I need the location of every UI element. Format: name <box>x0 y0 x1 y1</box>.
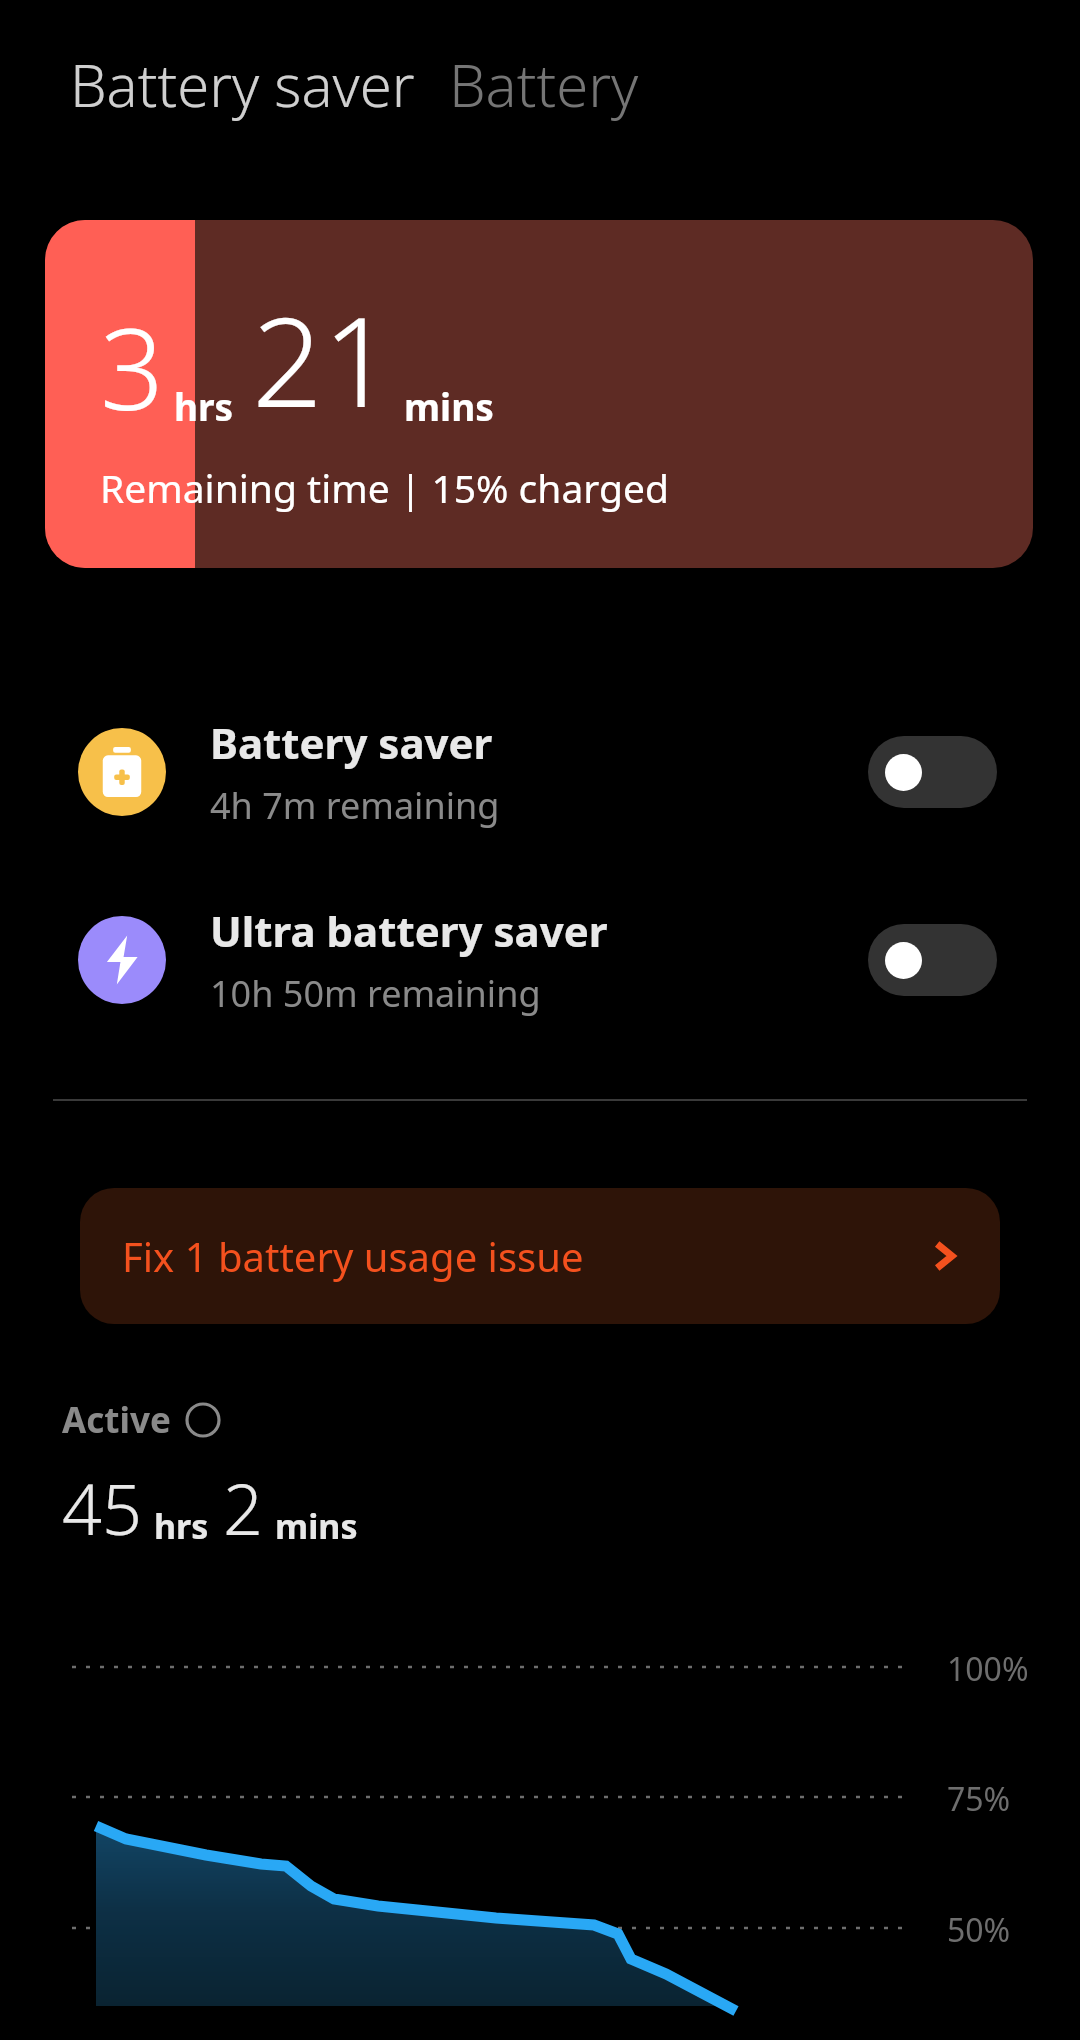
staticText: Battery saver <box>210 714 493 771</box>
staticText: 21 <box>252 274 394 443</box>
staticText: 45 <box>62 1460 142 1555</box>
button[interactable]: Battery saver toggle, off <box>868 736 997 808</box>
button[interactable]: 3 <box>45 220 1033 568</box>
button[interactable]: Help about active time <box>185 1402 221 1438</box>
button[interactable]: Fix 1 battery usage issue <box>80 1188 1000 1324</box>
staticText: 50% <box>947 1908 1011 1952</box>
other: Open battery usage issue <box>924 1236 964 1276</box>
staticText: 75% <box>947 1777 1011 1821</box>
button[interactable]: Battery <box>449 45 639 146</box>
button[interactable]: Battery saver <box>0 713 1080 831</box>
staticText: Active <box>62 1396 171 1444</box>
staticText: 100% <box>947 1647 1029 1691</box>
staticText: hrs <box>174 381 234 431</box>
button[interactable]: Battery saver <box>70 45 415 146</box>
button[interactable]: Ultra battery saver <box>0 901 1080 1019</box>
staticText: Remaining time | 15% charged <box>100 461 669 514</box>
button[interactable]: Ultra battery saver toggle, off <box>868 924 997 996</box>
staticText: hrs <box>154 1503 209 1549</box>
staticText: 2 <box>223 1460 263 1555</box>
staticText: Battery <box>449 45 639 124</box>
staticText: Battery saver <box>70 45 415 124</box>
staticText: Ultra battery saver <box>210 902 608 959</box>
staticText: Fix 1 battery usage issue <box>122 1229 584 1283</box>
staticText: mins <box>404 381 494 431</box>
staticText: 3 <box>100 290 164 443</box>
staticText: 10h 50m remaining <box>210 969 541 1018</box>
staticText: 4h 7m remaining <box>210 781 500 830</box>
staticText: mins <box>275 1503 358 1549</box>
